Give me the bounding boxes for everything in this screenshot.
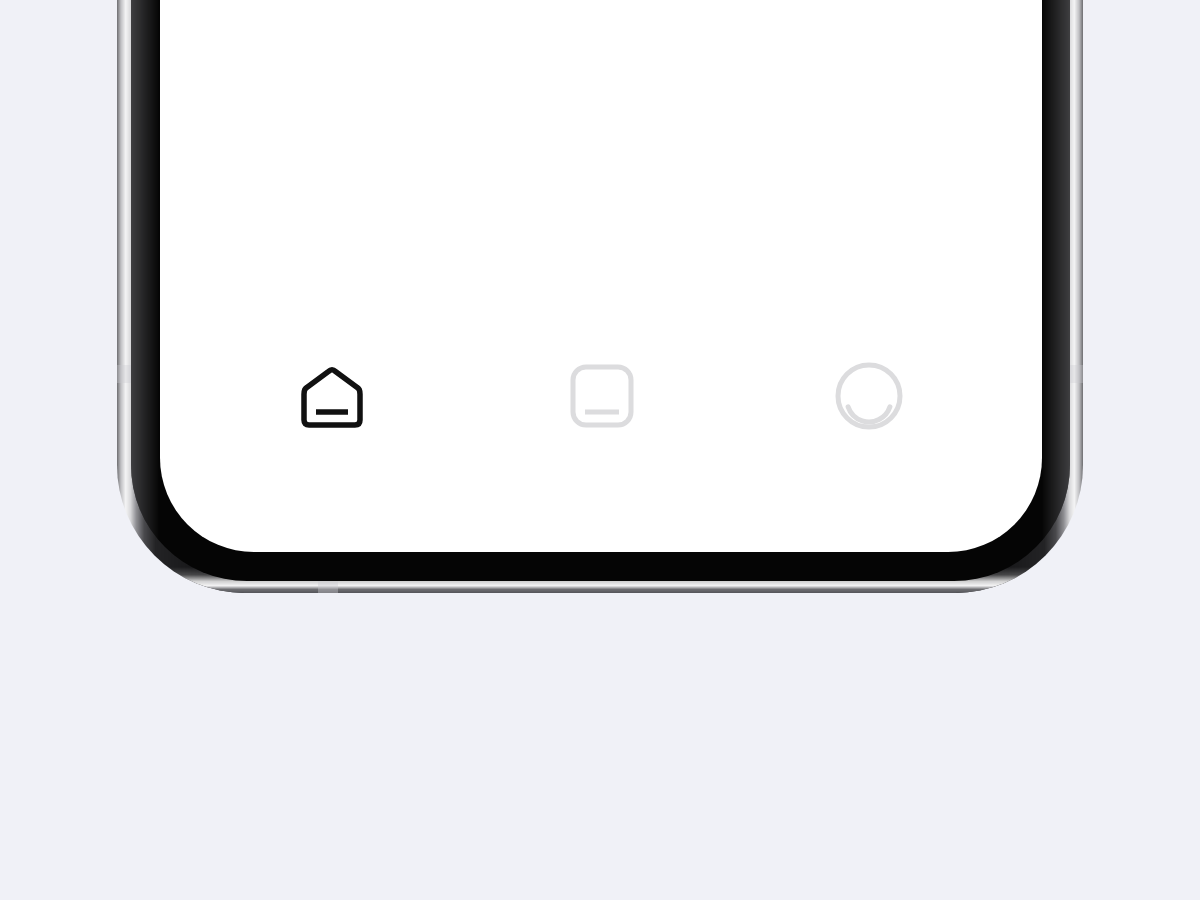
button[interactable]: Assistant [825,352,913,440]
button[interactable]: Recents [558,352,646,440]
button[interactable]: Home [288,353,376,441]
